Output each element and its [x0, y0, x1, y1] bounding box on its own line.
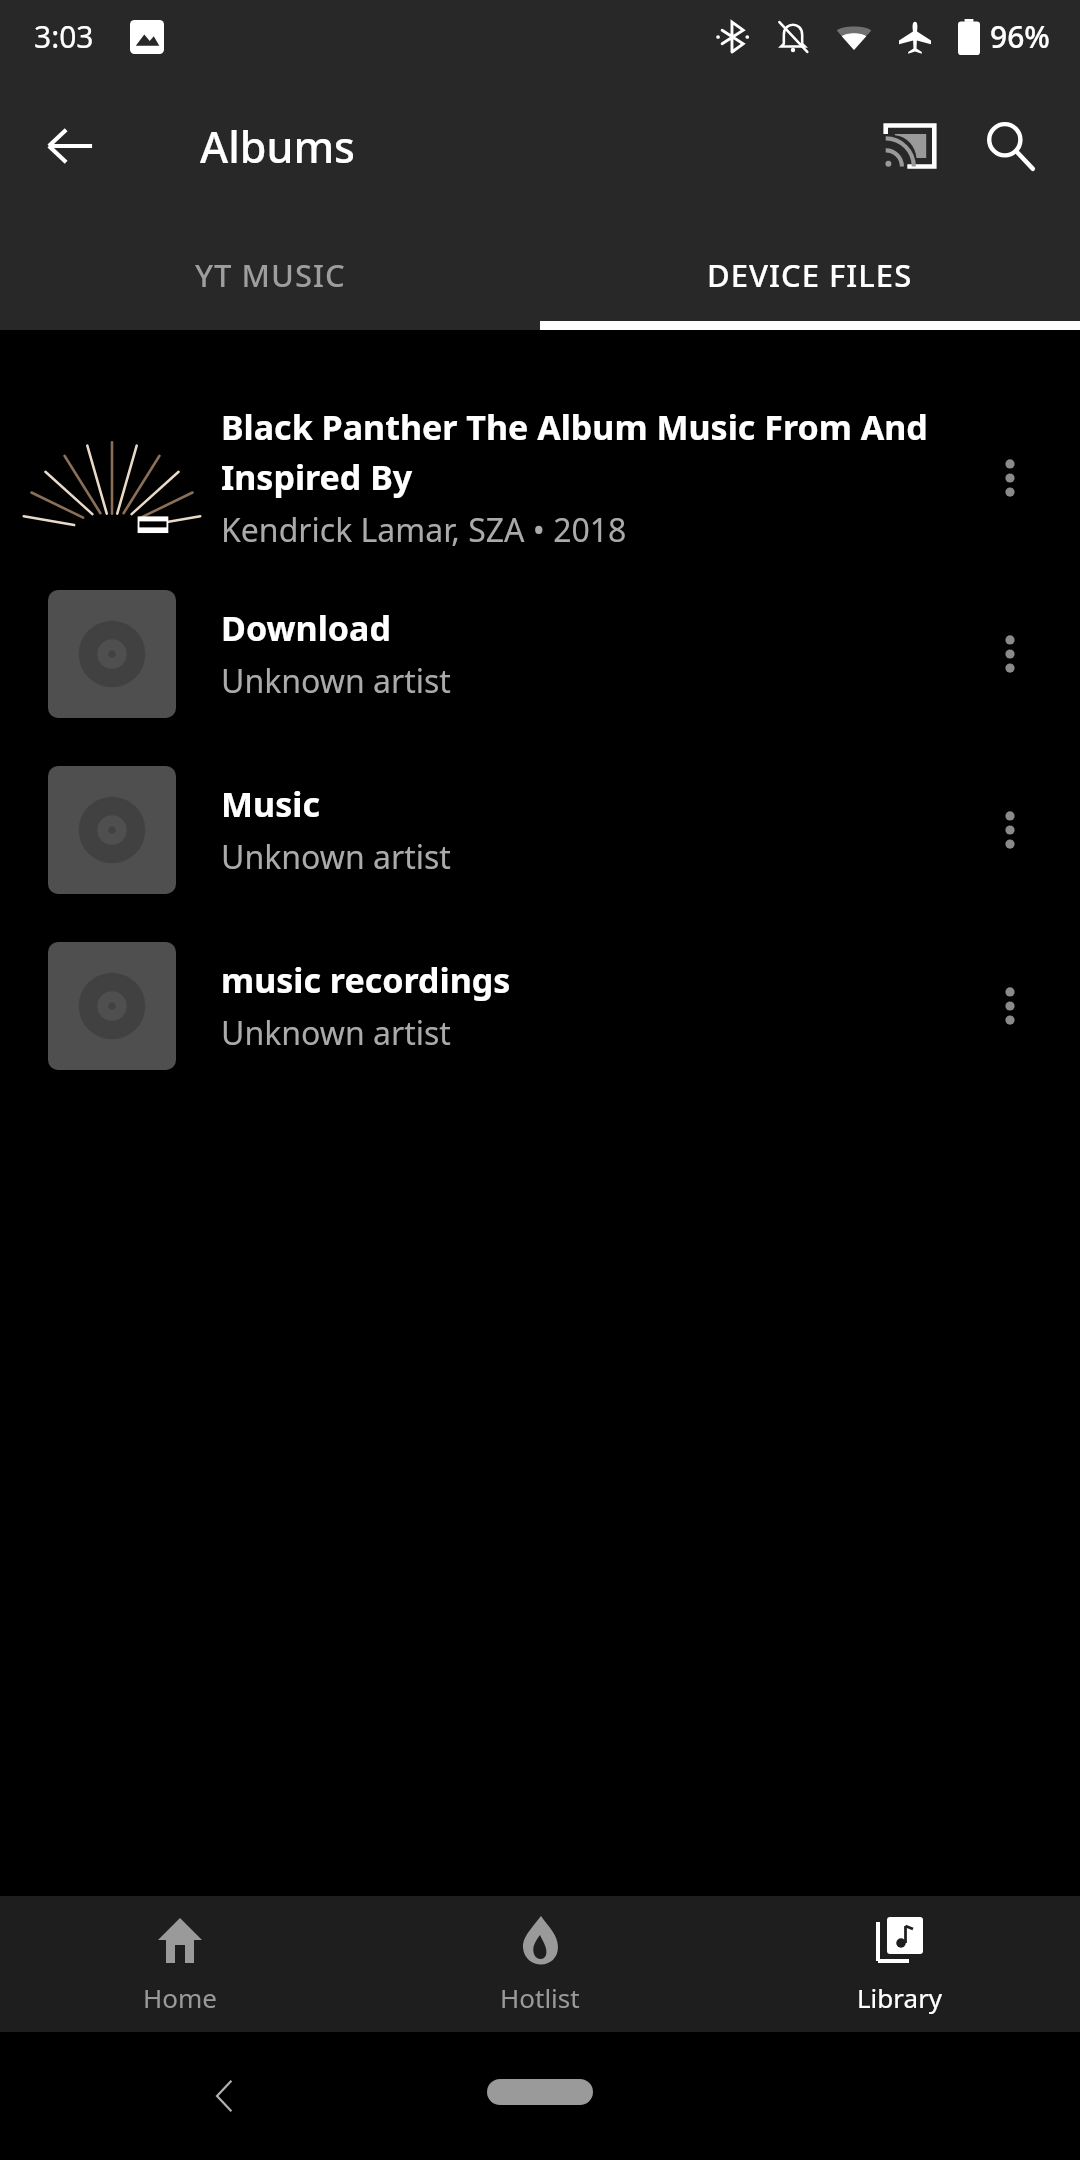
- button[interactable]: Back: [22, 98, 118, 194]
- button[interactable]: Hotlist: [360, 1896, 720, 2032]
- button[interactable]: Download: [0, 566, 1080, 742]
- button[interactable]: Back: [180, 2051, 270, 2141]
- staticText: 96%: [990, 16, 1050, 57]
- button[interactable]: Library: [720, 1896, 1080, 2032]
- staticText: Unknown artist: [221, 1011, 451, 1055]
- staticText: Download: [221, 605, 391, 651]
- button[interactable]: Search: [960, 96, 1060, 196]
- button[interactable]: Home: [487, 2079, 593, 2105]
- staticText: Home: [143, 1980, 217, 2015]
- staticText: Library: [857, 1980, 943, 2015]
- button[interactable]: YT MUSIC: [0, 220, 540, 330]
- staticText: Unknown artist: [221, 835, 451, 879]
- button[interactable]: music recordings: [0, 918, 1080, 1094]
- staticText: DEVICE FILES: [707, 254, 913, 296]
- staticText: Hotlist: [500, 1980, 580, 2015]
- staticText: Albums: [200, 117, 356, 176]
- button[interactable]: Music: [0, 742, 1080, 918]
- button[interactable]: Home: [0, 1896, 360, 2032]
- staticText: music recordings: [221, 957, 511, 1003]
- button[interactable]: DEVICE FILES: [540, 220, 1080, 330]
- staticText: YT MUSIC: [195, 254, 346, 296]
- button[interactable]: Cast: [860, 96, 960, 196]
- staticText: Kendrick Lamar, SZA • 2018: [221, 508, 627, 552]
- staticText: Inspired By: [221, 454, 413, 500]
- button[interactable]: Black Panther The Album Music From And: [0, 390, 1080, 566]
- button[interactable]: More options: [960, 604, 1060, 704]
- button[interactable]: More options: [960, 780, 1060, 880]
- staticText: Music: [221, 781, 320, 827]
- button[interactable]: More options: [960, 956, 1060, 1056]
- staticText: Unknown artist: [221, 659, 451, 703]
- staticText: 3:03: [34, 16, 94, 57]
- button[interactable]: More options: [960, 428, 1060, 528]
- staticText: Black Panther The Album Music From And: [221, 404, 928, 450]
